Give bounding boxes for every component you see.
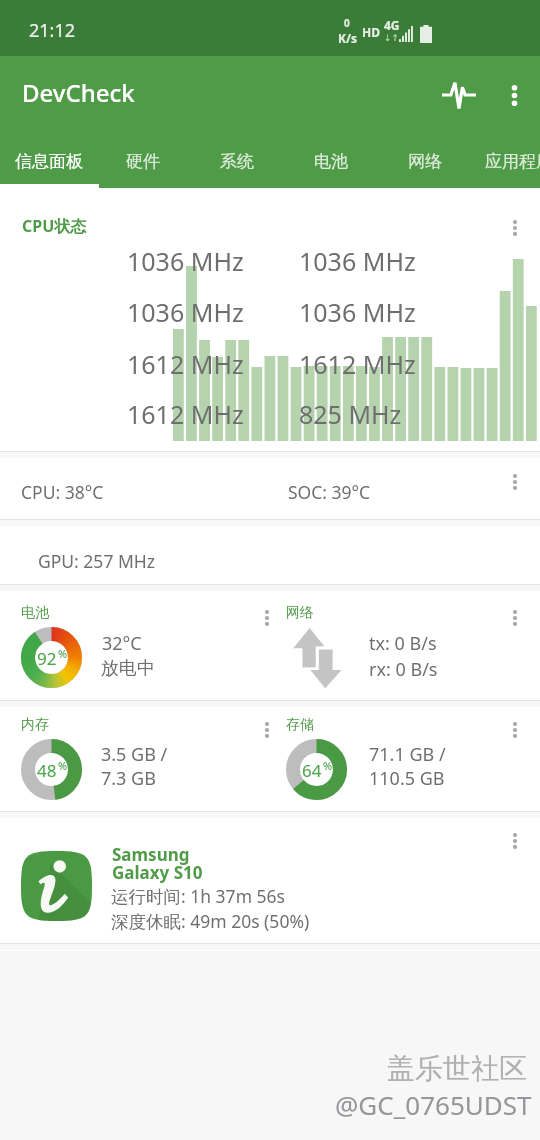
button[interactable]: Device options: [495, 821, 535, 861]
staticText: 1036 MHz: [127, 244, 244, 278]
button[interactable]: 硬件: [96, 134, 190, 188]
staticText: 92: [37, 647, 57, 670]
button[interactable]: Temperature options: [495, 462, 535, 502]
button[interactable]: 系统: [190, 134, 284, 188]
button[interactable]: [0, 592, 270, 700]
button[interactable]: Memory options: [247, 710, 287, 750]
staticText: 1036 MHz: [299, 244, 416, 278]
staticText: 48: [37, 759, 57, 782]
button[interactable]: CPU options: [495, 208, 535, 248]
staticText: 系统: [220, 151, 254, 172]
staticText: 110.5 GB: [369, 766, 445, 791]
staticText: %: [323, 758, 333, 773]
button[interactable]: Network options: [495, 598, 535, 638]
button[interactable]: 网络: [378, 134, 472, 188]
staticText: Galaxy S10: [112, 861, 203, 884]
button[interactable]: [0, 820, 540, 944]
staticText: 内存: [21, 716, 49, 734]
staticText: 深度休眠: 49m 20s (50%): [111, 909, 310, 933]
staticText: 盖乐世社区: [387, 1051, 527, 1086]
button[interactable]: 应用程序: [472, 134, 540, 188]
staticText: 32°C: [102, 631, 142, 656]
button[interactable]: 信息面板: [2, 134, 96, 188]
button[interactable]: [270, 707, 540, 811]
staticText: 7.3 GB: [101, 766, 156, 791]
staticText: 信息面板: [15, 151, 83, 172]
button[interactable]: More options: [490, 71, 538, 119]
staticText: 1612 MHz: [127, 347, 244, 381]
staticText: 1036 MHz: [299, 295, 416, 329]
button[interactable]: [0, 707, 270, 811]
staticText: 网络: [408, 151, 442, 172]
staticText: 825 MHz: [299, 397, 402, 431]
staticText: tx: 0 B/s: [369, 631, 437, 656]
button[interactable]: Storage options: [495, 710, 535, 750]
staticText: 存储: [286, 716, 314, 734]
staticText: %: [58, 758, 68, 773]
staticText: CPU: 38°C: [21, 480, 104, 504]
staticText: 应用程序: [485, 151, 540, 172]
staticText: rx: 0 B/s: [369, 657, 438, 682]
staticText: 0: [344, 16, 350, 30]
staticText: Samsung: [112, 843, 190, 866]
staticText: 电池: [21, 604, 49, 622]
staticText: %: [58, 646, 68, 661]
staticText: 4G: [384, 17, 400, 33]
staticText: 1036 MHz: [127, 295, 244, 329]
button[interactable]: Battery options: [247, 598, 287, 638]
staticText: 硬件: [126, 151, 160, 172]
staticText: DevCheck: [22, 76, 135, 109]
staticText: 3.5 GB /: [101, 742, 168, 767]
staticText: 1612 MHz: [127, 397, 244, 431]
staticText: 71.1 GB /: [369, 742, 446, 767]
staticText: GPU: 257 MHz: [38, 549, 156, 573]
staticText: @GC_0765UDST: [335, 1087, 532, 1122]
button[interactable]: Monitor: [435, 71, 483, 119]
staticText: CPU状态: [22, 215, 87, 237]
staticText: 21:12: [29, 18, 76, 43]
staticText: 放电中: [101, 657, 155, 680]
staticText: 1612 MHz: [299, 347, 416, 381]
staticText: 网络: [286, 604, 314, 622]
staticText: HD: [362, 24, 380, 40]
button[interactable]: [270, 592, 540, 700]
staticText: K/s: [338, 30, 357, 46]
staticText: 运行时间: 1h 37m 56s: [111, 884, 285, 908]
staticText: 电池: [314, 151, 348, 172]
staticText: 64: [302, 759, 322, 782]
button[interactable]: 电池: [284, 134, 378, 188]
staticText: ↓↑: [384, 33, 400, 43]
staticText: SOC: 39°C: [288, 480, 371, 504]
